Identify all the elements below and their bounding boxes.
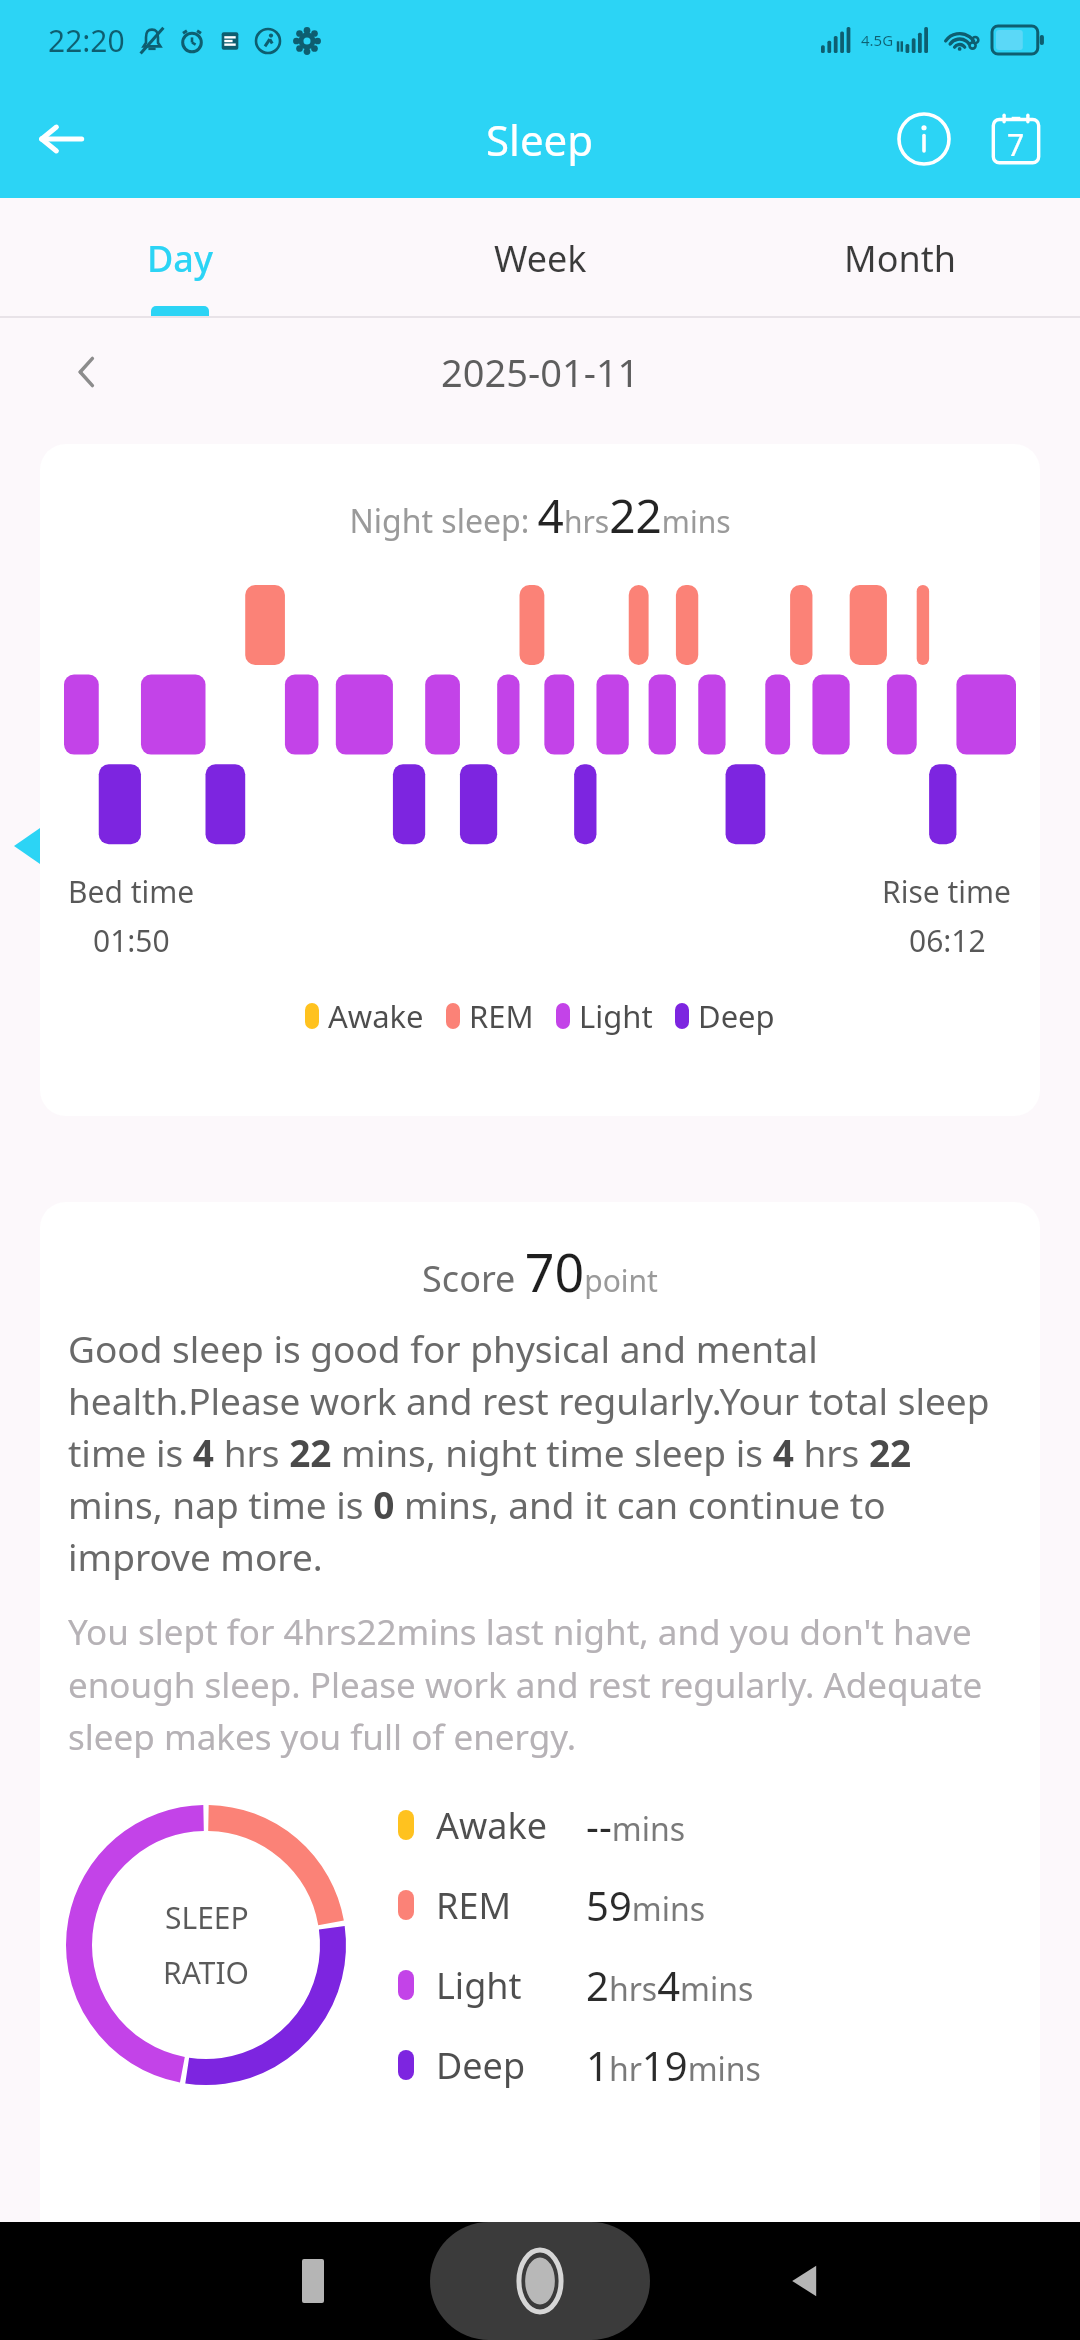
staticText: Day (147, 234, 213, 283)
button[interactable]: Day (0, 198, 360, 318)
staticText: --mins (586, 1798, 686, 1852)
staticText: Light (579, 995, 653, 1037)
button[interactable]: Recent apps (268, 2236, 358, 2326)
staticText: RATIO (163, 1952, 250, 1993)
staticText: You slept for 4hrs22mins last night, and… (68, 1608, 1012, 1760)
staticText: Night sleep: 4hrs22mins (349, 484, 731, 547)
staticText: 06:12 (909, 920, 986, 961)
button[interactable]: Week (360, 198, 720, 318)
staticText: Month (844, 234, 956, 283)
staticText: REM (469, 995, 534, 1037)
staticText: 59mins (586, 1878, 706, 1932)
button[interactable]: Back (24, 102, 98, 176)
button[interactable]: Home (485, 2226, 595, 2336)
button[interactable]: Back (760, 2236, 850, 2326)
staticText: 4.5G (861, 30, 894, 50)
staticText: Bed time (68, 871, 195, 912)
button[interactable]: Score 70point (40, 1202, 1040, 2340)
button[interactable]: Previous day (56, 341, 118, 403)
staticText: Rise time (882, 871, 1012, 912)
staticText: 1hr19mins (586, 2038, 761, 2092)
staticText: REM (436, 1881, 512, 1930)
staticText: Deep (436, 2041, 526, 2090)
staticText: Awake (436, 1801, 548, 1850)
button[interactable]: Night sleep: 4hrs22mins (40, 444, 1040, 1116)
staticText: Light (436, 1961, 522, 2010)
staticText: Deep (698, 995, 775, 1037)
staticText: Sleep (486, 111, 594, 168)
staticText: 2hrs4mins (586, 1958, 754, 2012)
staticText: 2025-01-11 (441, 346, 640, 398)
button[interactable]: Calendar (978, 101, 1054, 177)
staticText: Week (494, 234, 587, 283)
button[interactable]: Information (886, 101, 962, 177)
staticText: 22:20 (48, 20, 125, 61)
staticText: Score 70point (422, 1236, 658, 1307)
button[interactable]: Month (720, 198, 1080, 318)
staticText: 7 (1007, 124, 1025, 165)
staticText: 01:50 (93, 920, 170, 961)
staticText: SLEEP (165, 1897, 249, 1938)
staticText: Good sleep is good for physical and ment… (68, 1323, 1012, 1582)
staticText: Awake (328, 995, 424, 1037)
